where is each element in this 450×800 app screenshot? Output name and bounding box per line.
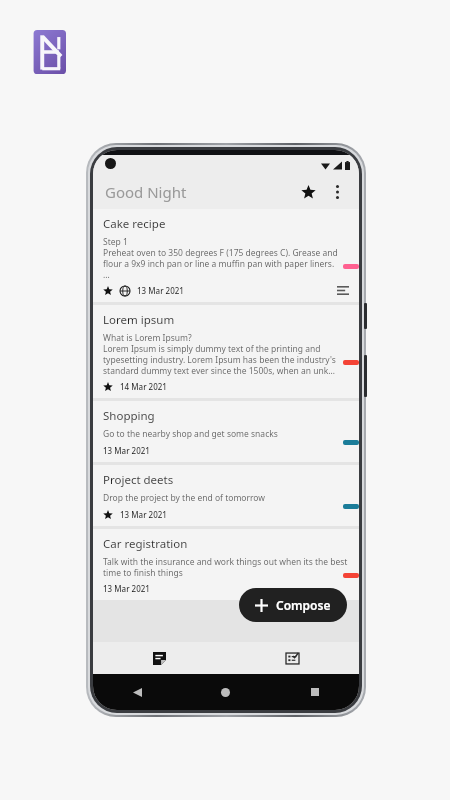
staticText: Shopping xyxy=(103,408,155,424)
staticText: What is Lorem Ipsum? Lorem Ipsum is simp… xyxy=(103,332,349,376)
button[interactable]: Home xyxy=(181,674,270,710)
button[interactable]: Recents xyxy=(270,674,359,710)
button[interactable]: Checklists xyxy=(226,642,359,674)
staticText: Car registration xyxy=(103,536,188,552)
button[interactable]: Favorites xyxy=(293,177,323,207)
staticText: Cake recipe xyxy=(103,216,166,232)
button[interactable]: Car registration xyxy=(93,529,359,600)
button[interactable]: Cake recipe xyxy=(93,209,359,302)
staticText: Project deets xyxy=(103,472,174,488)
button[interactable]: Back xyxy=(93,674,181,710)
staticText: 14 Mar 2021 xyxy=(120,381,167,392)
staticText: Good Night xyxy=(105,182,187,202)
button[interactable]: Project deets xyxy=(93,465,359,526)
staticText: Go to the nearby shop and get some snack… xyxy=(103,428,278,440)
button[interactable]: More options xyxy=(323,178,351,206)
staticText: 13 Mar 2021 xyxy=(137,285,184,296)
staticText: 13 Mar 2021 xyxy=(120,509,167,520)
button[interactable]: Shopping xyxy=(93,401,359,462)
staticText: 13 Mar 2021 xyxy=(103,445,150,456)
button[interactable]: Lorem ipsum xyxy=(93,305,359,398)
staticText: 13 Mar 2021 xyxy=(103,583,150,594)
staticText: Step 1 Preheat oven to 350 degrees F (17… xyxy=(103,236,349,280)
staticText: Drop the project by the end of tomorrow xyxy=(103,492,266,504)
staticText: Talk with the insurance and work things … xyxy=(103,556,349,578)
button[interactable]: Compose xyxy=(239,588,347,622)
button[interactable]: Notes xyxy=(93,642,226,674)
staticText: Lorem ipsum xyxy=(103,312,175,328)
staticText: Compose xyxy=(276,597,331,613)
